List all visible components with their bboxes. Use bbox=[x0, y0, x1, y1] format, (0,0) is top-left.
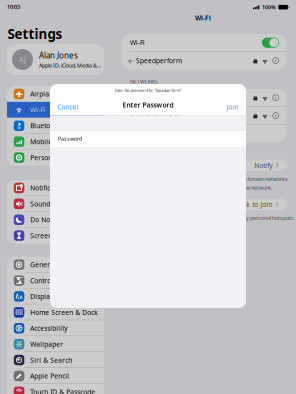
button[interactable]: Auto-Join Hotspot bbox=[122, 198, 286, 210]
button[interactable]: Mobile Data bbox=[7, 134, 104, 150]
staticText: Allow this device to automatically disco… bbox=[130, 214, 294, 222]
staticText: NETWORKS bbox=[130, 78, 158, 85]
staticText: BTWiFi-with-FON bbox=[130, 111, 181, 120]
staticText: Personal Hotspot bbox=[30, 153, 84, 162]
button[interactable]: Notifications bbox=[7, 180, 104, 196]
staticText: Password bbox=[58, 135, 82, 142]
staticText: Wi-Fi bbox=[130, 38, 145, 47]
button[interactable]: Sounds bbox=[7, 196, 104, 212]
staticText: Apple Pencil bbox=[30, 371, 69, 380]
staticText: Enter the password for “Speedperform” bbox=[114, 88, 181, 93]
staticText: Wi-Fi bbox=[30, 105, 45, 114]
button[interactable]: Cancel bbox=[50, 99, 86, 114]
staticText: AJ bbox=[19, 55, 26, 64]
button[interactable]: Personal Hotspot bbox=[7, 150, 104, 165]
button[interactable]: Speedperform bbox=[122, 52, 286, 69]
button[interactable]: Ask to Join Networks bbox=[122, 159, 286, 171]
staticText: Other… bbox=[130, 129, 152, 138]
button[interactable]: Wi-Fi bbox=[122, 34, 286, 51]
button[interactable]: Touch ID & Passcode bbox=[7, 384, 104, 394]
staticText: Mobile Data bbox=[30, 137, 69, 146]
button[interactable]: Wallpaper bbox=[7, 336, 104, 352]
staticText: Airplane Mode bbox=[30, 89, 77, 98]
staticText: Known networks will be joined automatica… bbox=[130, 175, 288, 183]
staticText: Notify bbox=[254, 161, 272, 170]
staticText: Alan Jones bbox=[39, 50, 78, 61]
staticText: Screen Time bbox=[30, 231, 70, 240]
staticText: Notifications bbox=[30, 183, 69, 192]
staticText: Settings bbox=[7, 25, 62, 43]
button[interactable]: General bbox=[7, 257, 104, 273]
staticText: Enter Password bbox=[122, 100, 173, 109]
button[interactable]: Apple Pencil bbox=[7, 368, 104, 384]
button[interactable]: Join bbox=[219, 99, 246, 114]
button[interactable]: Other… bbox=[122, 125, 286, 142]
staticText: Apple ID, iCloud, Media &… bbox=[39, 62, 101, 69]
staticText: are available, you will be asked before … bbox=[130, 184, 272, 191]
button[interactable]: Home Screen & Dock bbox=[7, 304, 104, 320]
staticText: Touch ID & Passcode bbox=[30, 387, 95, 394]
button[interactable]: Wi-Fi bbox=[7, 102, 104, 118]
staticText: Siri & Search bbox=[30, 356, 72, 364]
staticText: Sounds bbox=[30, 199, 53, 208]
staticText: Bluetooth bbox=[30, 121, 60, 130]
staticText: 100% bbox=[262, 4, 276, 11]
staticText: Join bbox=[227, 102, 239, 111]
staticText: General bbox=[30, 260, 56, 269]
button[interactable]: Airplane Mode bbox=[7, 86, 104, 102]
staticText: Wi-Fi bbox=[195, 13, 211, 22]
staticText: Home Screen & Dock bbox=[30, 308, 98, 317]
staticText: Cancel bbox=[57, 102, 78, 111]
staticText: Speedperform bbox=[136, 56, 182, 65]
button[interactable]: BTWiFi-with-FON bbox=[122, 107, 286, 124]
staticText: 10:03 bbox=[7, 3, 20, 10]
button[interactable]: Speedperform-Guest bbox=[122, 89, 286, 106]
staticText: Control Centre bbox=[30, 276, 76, 285]
staticText: Ask to Join bbox=[239, 200, 272, 209]
button[interactable]: Do Not Disturb bbox=[7, 212, 104, 228]
button[interactable]: Display & Brightness bbox=[7, 288, 104, 304]
button[interactable]: Accessibility bbox=[7, 320, 104, 336]
button[interactable]: Control Centre bbox=[7, 273, 104, 288]
staticText: Do Not Disturb bbox=[30, 215, 77, 224]
button[interactable]: Siri & Search bbox=[7, 352, 104, 368]
button[interactable]: Screen Time bbox=[7, 228, 104, 244]
staticText: Wallpaper bbox=[30, 340, 63, 349]
button[interactable]: Bluetooth bbox=[7, 118, 104, 134]
staticText: Display & Brightness bbox=[30, 292, 95, 301]
staticText: Accessibility bbox=[30, 324, 67, 333]
button[interactable]: AJ bbox=[7, 44, 104, 75]
